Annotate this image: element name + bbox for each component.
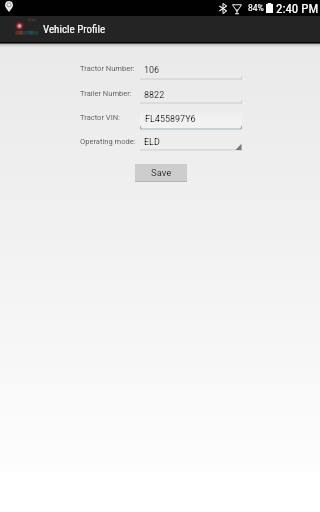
staticText: 84%: [248, 3, 264, 13]
staticText: 106: [144, 65, 160, 76]
button[interactable]: Save: [135, 164, 187, 181]
other: Wi-Fi: [232, 3, 242, 14]
other: Battery 84 percent: [266, 3, 273, 13]
button[interactable]: 8822: [140, 86, 242, 104]
staticText: Tractor VIN:: [80, 113, 120, 122]
other: App logo: [13, 16, 40, 38]
staticText: Tractor Number:: [80, 64, 135, 73]
staticText: 8822: [144, 90, 165, 101]
staticText: 2:40 PM: [276, 1, 319, 16]
button[interactable]: 106: [140, 62, 242, 80]
other: Location active: [5, 1, 13, 12]
button[interactable]: ELD: [140, 135, 242, 151]
button[interactable]: Vehicle Profile: [0, 16, 320, 42]
staticText: Trailer Number:: [80, 89, 132, 98]
staticText: FL455897Y6: [145, 114, 196, 125]
button[interactable]: FL455897Y6: [140, 111, 242, 130]
staticText: Vehicle Profile: [43, 23, 106, 36]
other: Bluetooth on: [219, 3, 227, 14]
staticText: Operating mode:: [80, 137, 136, 146]
staticText: Save: [151, 167, 172, 178]
staticText: ELD: [144, 137, 160, 148]
